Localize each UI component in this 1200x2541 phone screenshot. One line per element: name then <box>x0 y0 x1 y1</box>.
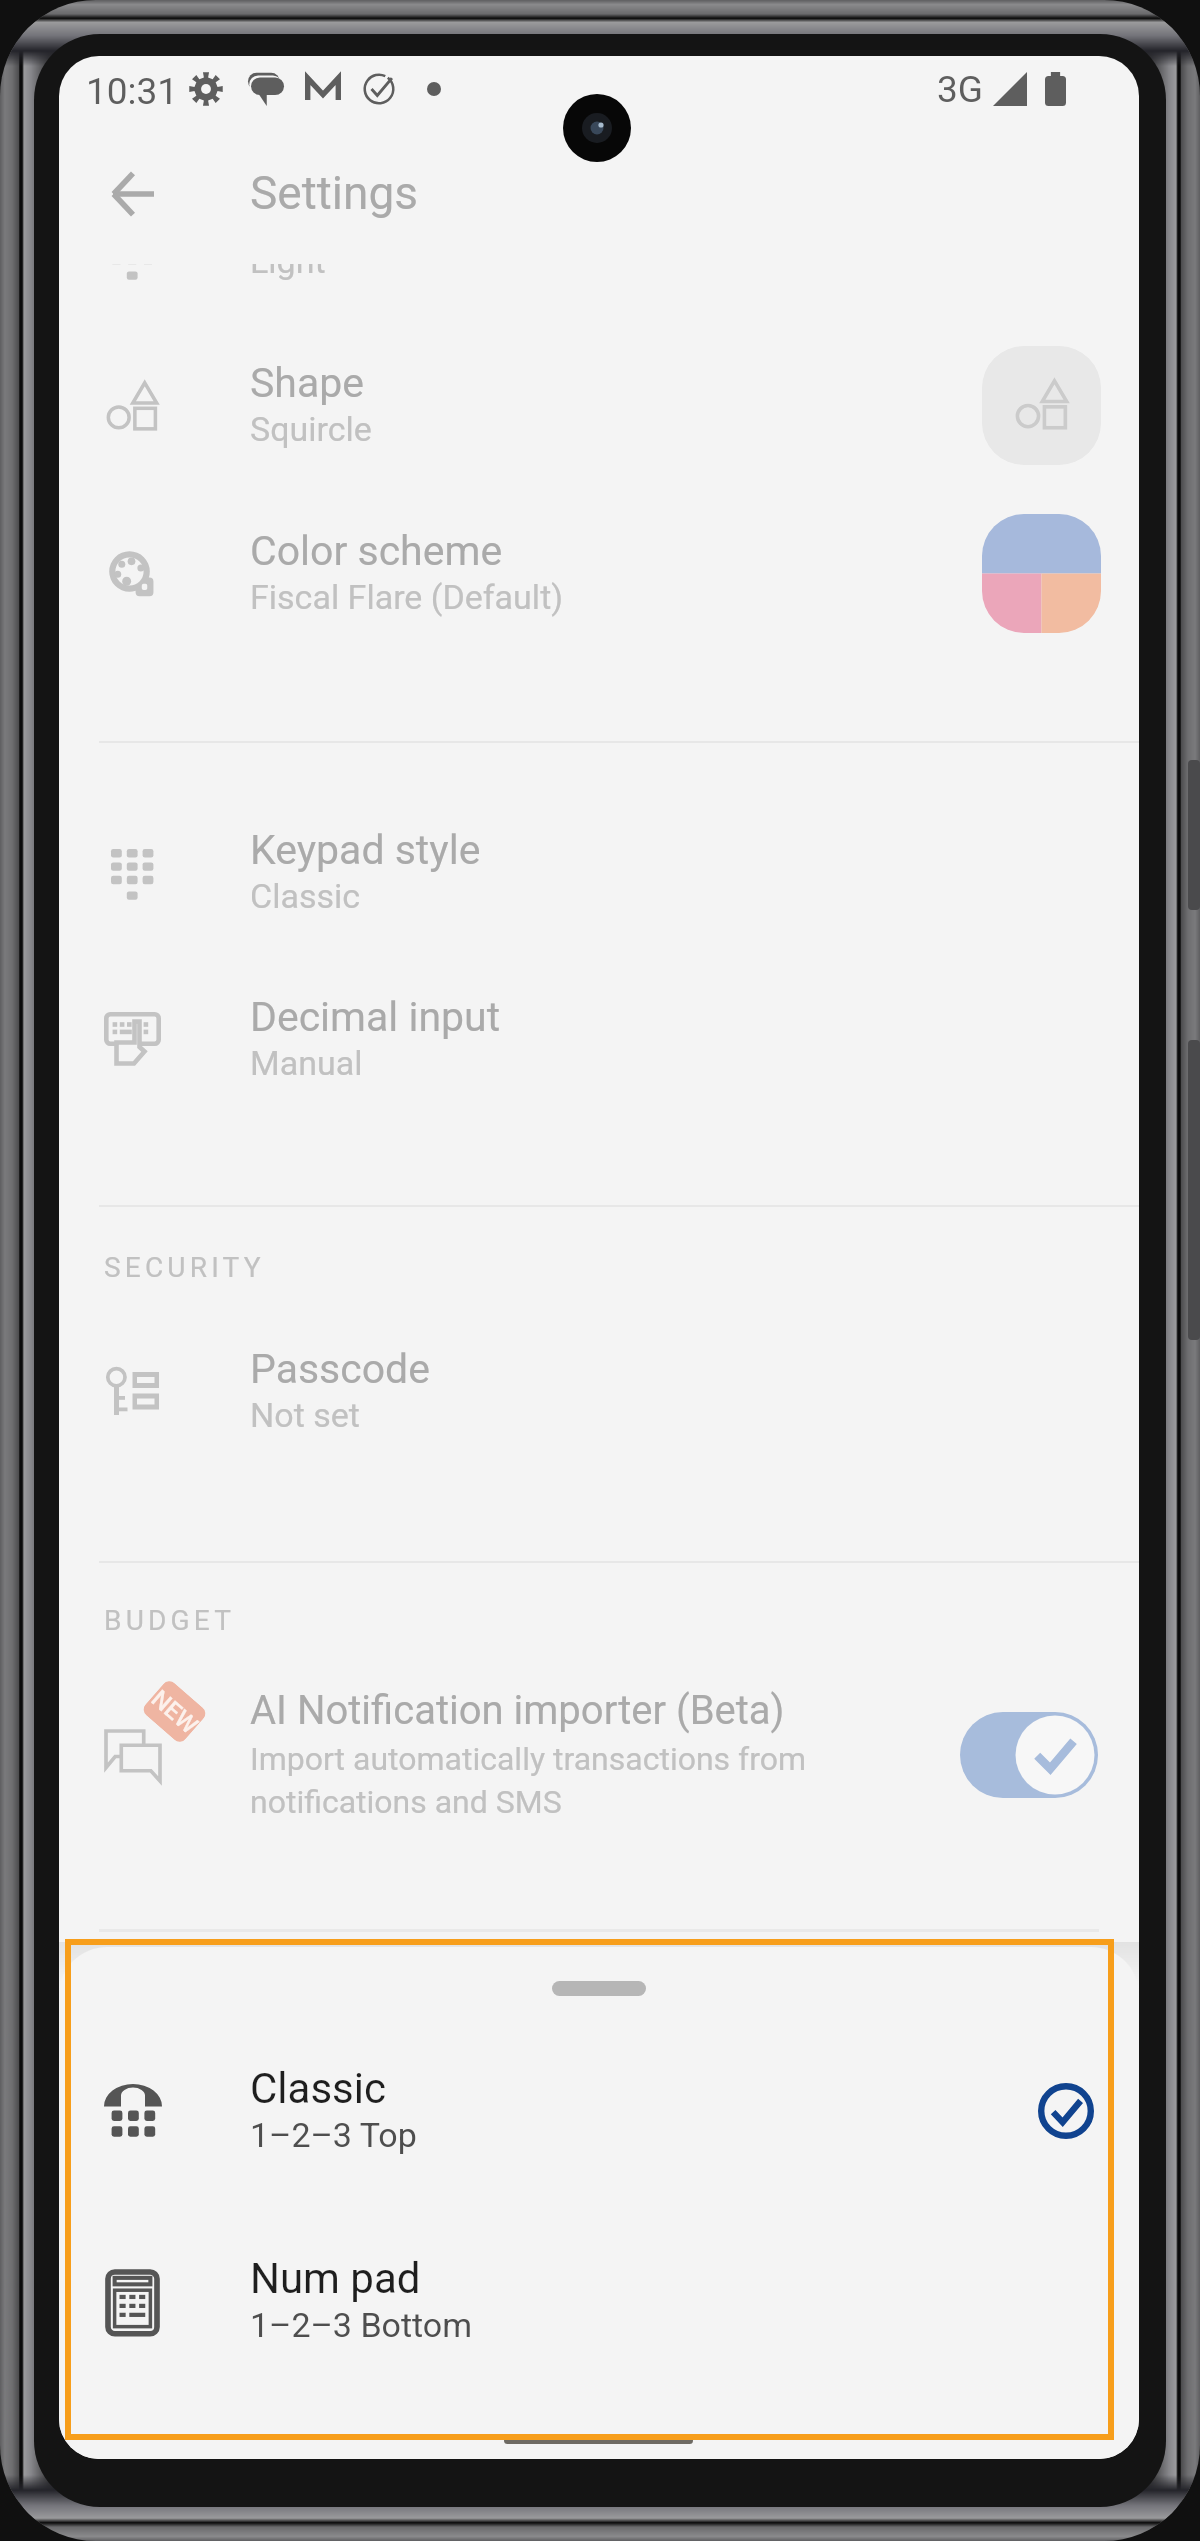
button[interactable]: Toggle AI Notification importer <box>960 1712 1098 1798</box>
staticText: SECURITY <box>104 1251 265 1284</box>
button[interactable] <box>59 2021 1139 2211</box>
button[interactable]: Shape preview <box>982 346 1101 465</box>
staticText: Light <box>250 264 326 281</box>
button[interactable] <box>59 2211 1139 2401</box>
staticText: Color scheme <box>250 527 503 575</box>
staticText: notifications and SMS <box>250 1783 562 1821</box>
button[interactable] <box>59 966 1139 1118</box>
button[interactable] <box>59 799 1139 951</box>
staticText: Keypad style <box>250 826 481 874</box>
staticText: Shape <box>250 359 364 407</box>
staticText: Import automatically transactions from <box>250 1740 807 1778</box>
button[interactable] <box>59 1318 1139 1470</box>
staticText: Passcode <box>250 1345 430 1393</box>
staticText: 3G <box>937 68 983 111</box>
staticText: Classic <box>250 2064 386 2113</box>
staticText: Fiscal Flare (Default) <box>250 577 564 617</box>
staticText: 10:31 <box>86 70 179 113</box>
staticText: NEW <box>146 1685 203 1740</box>
staticText: Decimal input <box>250 993 501 1041</box>
staticText: Squircle <box>250 409 372 449</box>
staticText: 1–2–3 Top <box>250 2115 417 2155</box>
staticText: BUDGET <box>104 1604 236 1637</box>
staticText: Settings <box>250 166 418 220</box>
button[interactable]: Color scheme preview <box>982 514 1101 633</box>
staticText: AI Notification importer (Beta) <box>250 1687 785 1734</box>
staticText: 1–2–3 Bottom <box>250 2305 473 2345</box>
button[interactable] <box>59 1660 1139 1870</box>
staticText: Manual <box>250 1043 363 1083</box>
staticText: Not set <box>250 1395 360 1435</box>
button[interactable]: Back <box>97 158 169 230</box>
staticText: Num pad <box>250 2254 421 2303</box>
staticText: Classic <box>250 876 361 916</box>
button[interactable] <box>59 332 1139 484</box>
button[interactable] <box>59 500 1139 652</box>
